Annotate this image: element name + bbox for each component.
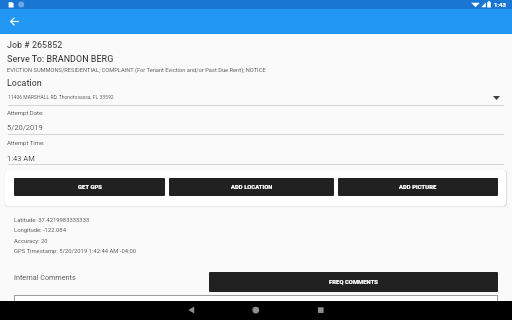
staticText: Serve To: BRANDON BERG (7, 54, 114, 65)
staticText: Location (7, 78, 42, 88)
staticText: Latitude: 37.4219983333333 (14, 217, 90, 224)
staticText: 11406 MARSHALL RD, Thonotosassa, FL 3359… (8, 94, 114, 100)
staticText: FREQ COMMENTS (329, 279, 378, 286)
button[interactable]: ADD LOCATION (169, 178, 334, 196)
button[interactable]: GET GPS (14, 178, 165, 196)
staticText: Attempt Time: (7, 139, 45, 146)
staticText: Longitude: -122.084 (14, 227, 66, 234)
button[interactable]: Back (5, 9, 24, 34)
staticText: Accuracy: 20 (14, 238, 48, 245)
staticText: 1:43 (494, 1, 506, 8)
staticText: ADD PICTURE (399, 184, 437, 191)
staticText: 5/20/2019 (7, 123, 43, 132)
staticText: EVICTION SUMMONS/RESIDENTIAL; COMPLAINT … (7, 67, 266, 74)
staticText: Attempt Date: (7, 109, 44, 116)
staticText: GET GPS (78, 184, 102, 191)
button[interactable]: 11406 MARSHALL RD, Thonotosassa, FL 3359… (8, 91, 504, 106)
button[interactable] (14, 295, 498, 305)
staticText: 1:43 AM (7, 154, 35, 163)
staticText: Internal Comments (14, 273, 76, 281)
staticText: GPS Timestamp: 5/20/2019 1:42:44 AM -04:… (14, 248, 137, 255)
button[interactable]: ADD PICTURE (338, 178, 498, 196)
staticText: Job # 265852 (7, 40, 63, 50)
staticText: ADD LOCATION (231, 184, 273, 191)
button[interactable]: FREQ COMMENTS (209, 272, 498, 292)
